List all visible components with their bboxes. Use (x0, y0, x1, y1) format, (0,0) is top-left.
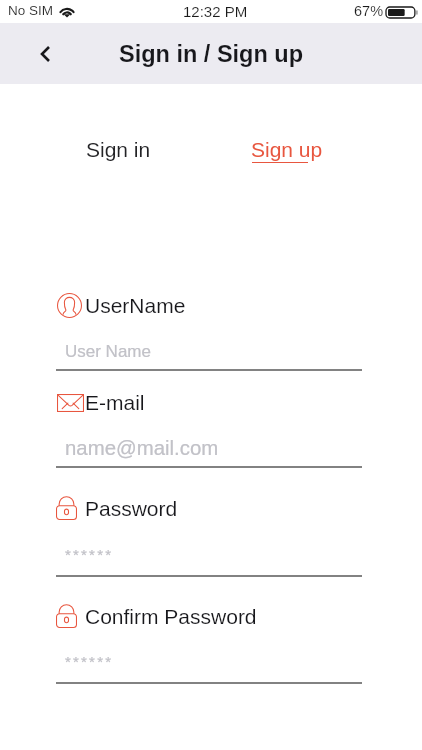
staticText: Confirm Password (85, 605, 257, 628)
button[interactable]: UserName (85, 294, 186, 317)
button[interactable]: Sign in (86, 138, 151, 161)
staticText: Sign in / Sign up (119, 41, 304, 67)
staticText: 12:32 PM (183, 3, 248, 20)
staticText: UserName (85, 294, 186, 317)
staticText: Password (85, 497, 178, 520)
staticText: User Name (65, 342, 151, 361)
staticText: Sign in (86, 138, 151, 161)
button[interactable]: Password (85, 497, 178, 520)
staticText: ****** (65, 546, 114, 563)
button[interactable]: Confirm Password (85, 605, 257, 628)
staticText: Sign up (251, 138, 323, 161)
staticText: E-mail (85, 391, 145, 414)
button[interactable]: E-mail (85, 391, 145, 414)
staticText: No SIM (8, 3, 54, 18)
button[interactable]: ****** (65, 653, 114, 670)
staticText: 67% (354, 3, 384, 19)
staticText: ****** (65, 653, 114, 670)
button[interactable]: name@mail.com (65, 437, 219, 460)
button[interactable]: Sign up (251, 138, 323, 161)
button[interactable]: Back (26, 35, 64, 73)
button[interactable]: User Name (65, 342, 151, 361)
button[interactable]: ****** (65, 546, 114, 563)
staticText: name@mail.com (65, 437, 219, 460)
